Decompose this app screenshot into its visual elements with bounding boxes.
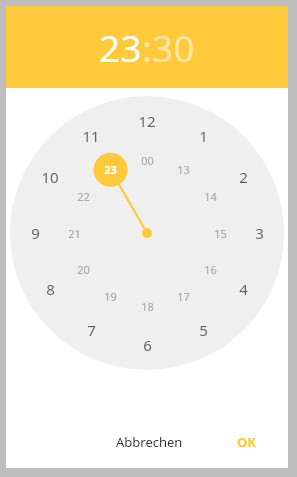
staticText: 16 xyxy=(204,262,217,277)
button[interactable]: 21 xyxy=(68,226,81,241)
button[interactable]: 5 xyxy=(199,320,208,340)
other: Clock face, 23 hours selected xyxy=(6,88,288,416)
staticText: 4 xyxy=(239,279,248,299)
staticText: 3 xyxy=(255,223,264,243)
button[interactable]: 22 xyxy=(77,189,90,204)
button[interactable]: 9 xyxy=(31,223,40,243)
staticText: 18 xyxy=(141,299,154,314)
button[interactable]: 19 xyxy=(104,289,117,304)
button[interactable]: 23 xyxy=(104,162,117,177)
button[interactable]: OK xyxy=(227,425,266,459)
staticText: 21 xyxy=(68,226,81,241)
button[interactable]: 3 xyxy=(255,223,264,243)
staticText: 00 xyxy=(141,153,154,168)
staticText: 5 xyxy=(199,320,208,340)
button[interactable]: 16 xyxy=(204,262,217,277)
button[interactable]: 15 xyxy=(214,226,227,241)
staticText: 2 xyxy=(239,167,248,187)
button[interactable]: 18 xyxy=(141,299,154,314)
button[interactable]: 11 xyxy=(82,126,100,146)
staticText: 12 xyxy=(138,111,156,131)
button[interactable]: 17 xyxy=(177,289,190,304)
staticText: 11 xyxy=(82,126,100,146)
button[interactable]: 23 xyxy=(99,22,142,72)
button[interactable]: 12 xyxy=(138,111,156,131)
button[interactable]: 14 xyxy=(204,189,217,204)
staticText: 19 xyxy=(104,289,117,304)
staticText: 15 xyxy=(214,226,227,241)
staticText: 23 xyxy=(104,162,117,177)
staticText: 22 xyxy=(77,189,90,204)
staticText: 20 xyxy=(77,262,90,277)
button[interactable]: Abbrechen xyxy=(106,425,193,459)
staticText: 13 xyxy=(177,162,190,177)
button[interactable]: 20 xyxy=(77,262,90,277)
staticText: Abbrechen xyxy=(116,433,183,451)
button[interactable]: 4 xyxy=(239,279,248,299)
button[interactable]: 8 xyxy=(46,279,55,299)
button[interactable]: 7 xyxy=(87,320,96,340)
button[interactable]: 13 xyxy=(177,162,190,177)
button[interactable]: 6 xyxy=(143,335,152,355)
button[interactable]: 1 xyxy=(199,126,208,146)
staticText: 7 xyxy=(87,320,96,340)
button[interactable]: 30 xyxy=(152,22,195,72)
staticText: 8 xyxy=(46,279,55,299)
staticText: OK xyxy=(237,433,256,451)
staticText: 1 xyxy=(199,126,208,146)
staticText: 9 xyxy=(31,223,40,243)
button[interactable]: 00 xyxy=(141,153,154,168)
button[interactable]: 2 xyxy=(239,167,248,187)
staticText: 6 xyxy=(143,335,152,355)
staticText: 10 xyxy=(41,167,59,187)
button[interactable]: 10 xyxy=(41,167,59,187)
staticText: 17 xyxy=(177,289,190,304)
staticText: 14 xyxy=(204,189,217,204)
staticText: : xyxy=(142,22,152,72)
